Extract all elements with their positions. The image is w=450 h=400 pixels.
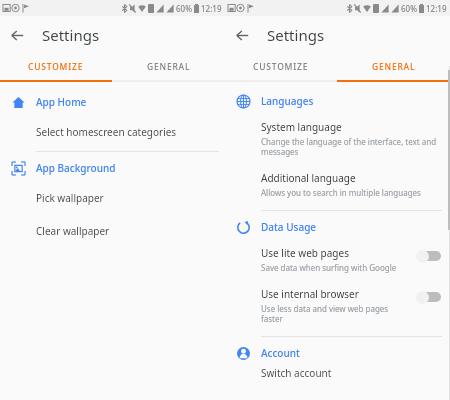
staticText: App Home bbox=[36, 95, 87, 109]
staticText: 60% bbox=[401, 3, 417, 14]
staticText: Clear wallpaper bbox=[36, 224, 110, 238]
staticText: 12:19 bbox=[201, 3, 222, 14]
button[interactable]: Languages bbox=[225, 88, 450, 114]
button[interactable]: Back bbox=[225, 18, 259, 52]
staticText: Use less data and view web pages faster bbox=[261, 303, 389, 324]
button[interactable]: Back bbox=[0, 18, 34, 52]
staticText: 12:19 bbox=[426, 3, 447, 14]
staticText: Languages bbox=[261, 94, 314, 108]
staticText: Change the language of the interface, te… bbox=[261, 136, 437, 157]
staticText: Select homescreen categories bbox=[36, 125, 177, 139]
staticText: Account bbox=[261, 346, 300, 360]
staticText: Settings bbox=[267, 25, 325, 45]
staticText: Use lite web pages bbox=[261, 246, 349, 260]
button[interactable]: Use internal browser bbox=[225, 281, 450, 332]
staticText: Pick wallpaper bbox=[36, 191, 104, 205]
button[interactable]: Use lite web pages bbox=[416, 249, 442, 263]
staticText: App Background bbox=[36, 161, 116, 175]
staticText: GENERAL bbox=[147, 61, 191, 73]
staticText: Use internal browser bbox=[261, 287, 359, 301]
staticText: CUSTOMIZE bbox=[28, 61, 84, 73]
button[interactable]: CUSTOMIZE bbox=[0, 54, 112, 80]
button[interactable]: CUSTOMIZE bbox=[225, 54, 337, 80]
button[interactable]: GENERAL bbox=[337, 54, 450, 80]
staticText: 60% bbox=[176, 3, 192, 14]
button[interactable]: Use internal browser bbox=[416, 290, 442, 304]
button[interactable]: Data Usage bbox=[225, 214, 450, 240]
staticText: Settings bbox=[42, 25, 100, 45]
button[interactable]: GENERAL bbox=[112, 54, 225, 80]
button[interactable]: Account bbox=[225, 340, 450, 366]
button[interactable]: System language bbox=[225, 114, 450, 165]
button[interactable]: Clear wallpaper bbox=[0, 214, 225, 247]
staticText: Allows you to search in multiple languag… bbox=[261, 187, 421, 198]
button[interactable]: Switch account bbox=[225, 366, 450, 399]
button[interactable]: Pick wallpaper bbox=[0, 181, 225, 214]
staticText: System language bbox=[261, 120, 342, 134]
button[interactable]: Use lite web pages bbox=[225, 240, 450, 281]
button[interactable]: App Home bbox=[0, 89, 225, 115]
staticText: Additional language bbox=[261, 171, 356, 185]
staticText: Switch account bbox=[261, 366, 332, 380]
staticText: GENERAL bbox=[372, 61, 416, 73]
button[interactable]: Additional language bbox=[225, 165, 450, 206]
button[interactable]: App Background bbox=[0, 155, 225, 181]
staticText: Data Usage bbox=[261, 220, 317, 234]
staticText: Save data when surfing with Google bbox=[261, 262, 397, 273]
staticText: CUSTOMIZE bbox=[253, 61, 309, 73]
button[interactable]: Select homescreen categories bbox=[0, 115, 225, 148]
